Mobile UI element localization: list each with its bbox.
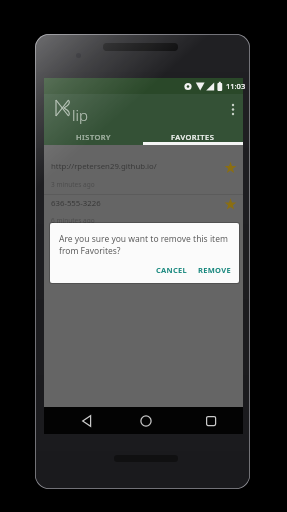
staticText: HISTORY: [76, 132, 111, 142]
staticText: REMOVE: [198, 265, 231, 275]
button[interactable]: [196, 407, 226, 434]
staticText: Are you sure you want to remove this ite…: [59, 233, 228, 257]
button[interactable]: CANCEL: [153, 262, 191, 278]
staticText: 6 minutes ago: [51, 216, 95, 225]
button[interactable]: [131, 407, 161, 434]
staticText: 636-555-3226: [51, 198, 101, 209]
staticText: http://rpetersen29.github.io/: [51, 161, 157, 172]
button[interactable]: REMOVE: [194, 262, 234, 278]
button[interactable]: [72, 407, 102, 434]
staticText: 3 minutes ago: [51, 180, 95, 189]
staticText: CANCEL: [156, 265, 188, 275]
button[interactable]: [231, 103, 235, 117]
staticText: 11:03: [226, 81, 246, 91]
staticText: lip: [72, 105, 88, 125]
button[interactable]: HISTORY: [44, 128, 143, 145]
button[interactable]: [44, 195, 243, 239]
staticText: FAVORITES: [171, 132, 215, 142]
button[interactable]: [44, 145, 243, 195]
button[interactable]: FAVORITES: [143, 128, 243, 145]
